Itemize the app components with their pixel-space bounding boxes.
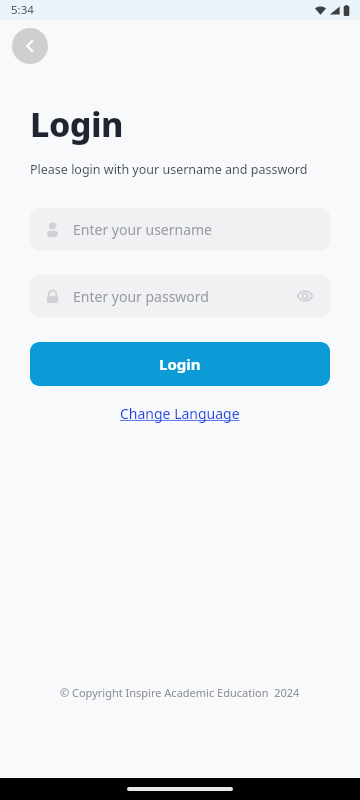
staticText: Login [159, 354, 201, 374]
staticText: © Copyright Inspire Academic Education 2… [60, 685, 300, 700]
button[interactable]: Change Language [114, 401, 246, 426]
staticText: Enter your password [73, 287, 209, 306]
button[interactable]: Show password [294, 285, 316, 307]
button[interactable]: Back [12, 28, 48, 64]
staticText: Change Language [120, 404, 240, 423]
staticText: Please login with your username and pass… [30, 161, 308, 178]
staticText: Enter your username [73, 220, 213, 239]
button[interactable]: Enter your username [30, 208, 330, 250]
staticText: 5:34 [11, 2, 34, 18]
button[interactable]: Login [30, 342, 330, 386]
staticText: Login [30, 101, 123, 147]
button[interactable]: Enter your password [30, 275, 330, 317]
